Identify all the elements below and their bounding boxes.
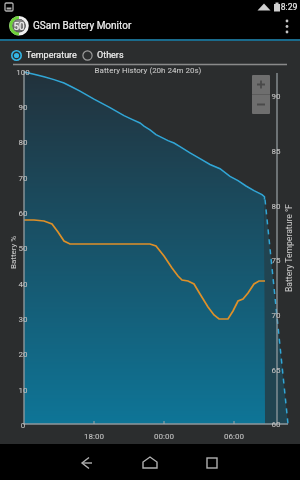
staticText: 30 xyxy=(0,315,83,324)
button[interactable]: Home xyxy=(125,444,175,480)
staticText: Battery History (20h 24m 20s) xyxy=(58,66,238,75)
staticText: 90 xyxy=(0,103,83,112)
staticText: 00:00 xyxy=(104,432,224,441)
staticText: 80 xyxy=(216,202,300,211)
button[interactable]: Temperature xyxy=(6,44,82,67)
button[interactable]: Zoom in xyxy=(252,75,270,94)
button[interactable]: Recent apps xyxy=(180,444,250,480)
staticText: 70 xyxy=(0,174,83,183)
staticText: 0 xyxy=(0,421,83,430)
button[interactable]: Back xyxy=(55,444,125,480)
staticText: 18:00 xyxy=(34,432,154,441)
staticText: 10 xyxy=(0,386,83,395)
staticText: Others xyxy=(97,50,124,61)
staticText: 100 xyxy=(0,68,83,77)
staticText: 60 xyxy=(216,420,300,429)
staticText: Temperature xyxy=(26,50,77,61)
staticText: 70 xyxy=(216,311,300,320)
staticText: 75 xyxy=(216,256,300,265)
staticText: 80 xyxy=(0,138,83,147)
staticText: 8:29 xyxy=(274,2,300,12)
staticText: 20 xyxy=(0,350,83,359)
staticText: Battery % xyxy=(9,235,18,269)
staticText: 06:00 xyxy=(174,432,294,441)
button[interactable]: Zoom out xyxy=(252,95,270,114)
staticText: 85 xyxy=(216,147,300,156)
staticText: 40 xyxy=(0,280,83,289)
staticText: GSam Battery Monitor xyxy=(33,20,132,32)
staticText: Battery Temperature °F xyxy=(284,204,294,292)
staticText: 60 xyxy=(0,209,83,218)
staticText: 65 xyxy=(216,366,300,375)
staticText: 50 xyxy=(7,21,31,33)
button[interactable]: Others xyxy=(77,44,129,67)
staticText: 50 xyxy=(0,244,83,253)
staticText: 90 xyxy=(216,92,300,101)
button[interactable]: More options xyxy=(276,14,300,40)
